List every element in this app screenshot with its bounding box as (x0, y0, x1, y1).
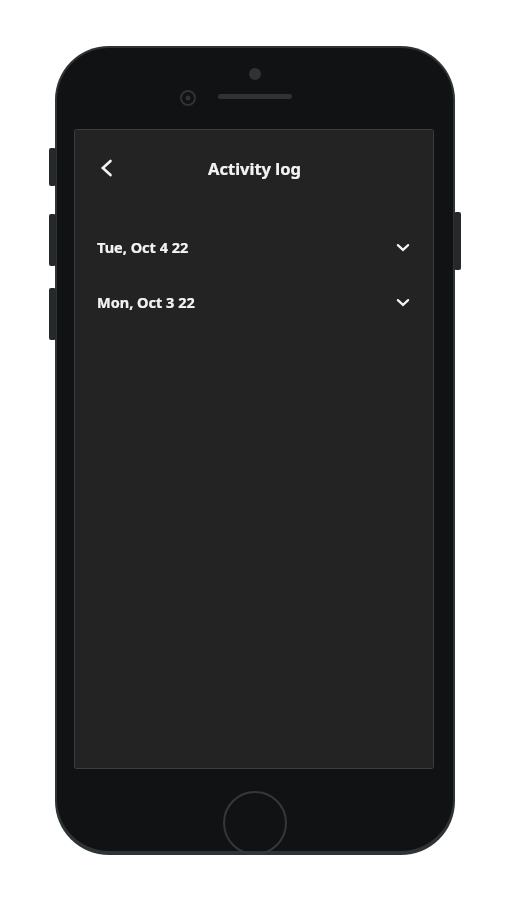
button[interactable]: Home (223, 791, 287, 855)
staticText: Activity log (208, 157, 301, 179)
button[interactable]: Back (85, 146, 129, 190)
button[interactable]: Tue, Oct 4 22 (75, 228, 433, 266)
staticText: Mon, Oct 3 22 (97, 292, 195, 312)
button[interactable]: Mon, Oct 3 22 (75, 283, 433, 321)
staticText: Tue, Oct 4 22 (97, 237, 189, 257)
